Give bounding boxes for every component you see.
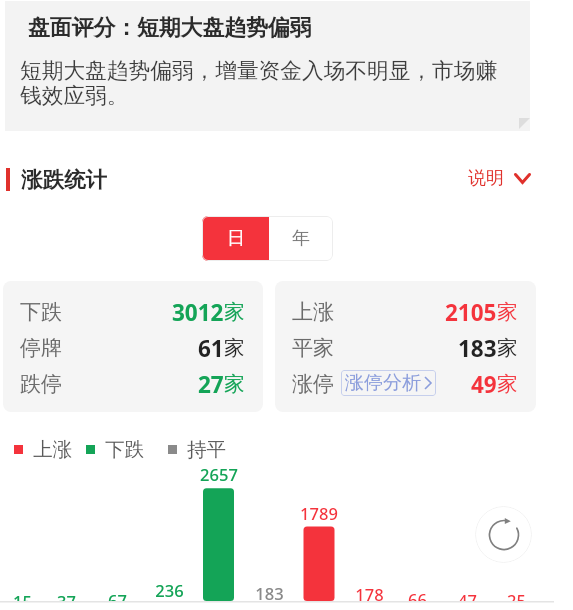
button[interactable]: 日 xyxy=(202,216,269,261)
staticText: 2105 xyxy=(445,297,497,328)
staticText: 183 xyxy=(458,333,497,364)
staticText: 上涨 xyxy=(292,299,334,325)
staticText: 短期大盘趋势偏弱，增量资金入场不明显，市场赚钱效应弱。 xyxy=(20,57,512,110)
staticText: 37 xyxy=(57,590,76,601)
button[interactable]: 盘面评分：短期大盘趋势偏弱 xyxy=(5,1,530,131)
button[interactable]: 说明 xyxy=(468,164,531,192)
button[interactable]: 年 xyxy=(269,216,333,261)
staticText: 家 xyxy=(224,335,245,361)
button[interactable]: 上涨 xyxy=(14,436,72,462)
staticText: 上涨 xyxy=(33,437,72,462)
staticText: 涨停 xyxy=(292,371,334,397)
button[interactable]: 上涨 xyxy=(275,281,536,412)
staticText: 47 xyxy=(458,589,477,601)
staticText: 27 xyxy=(198,369,224,400)
staticText: 盘面评分：短期大盘趋势偏弱 xyxy=(28,14,312,41)
staticText: 3012 xyxy=(172,297,224,328)
staticText: 年 xyxy=(292,227,310,250)
staticText: 说明 xyxy=(468,167,504,190)
staticText: 25 xyxy=(507,589,526,601)
staticText: 178 xyxy=(355,583,384,601)
button[interactable]: 持平 xyxy=(168,436,226,462)
staticText: 236 xyxy=(155,579,184,601)
staticText: 涨跌统计 xyxy=(21,166,107,193)
staticText: 2657 xyxy=(200,463,238,485)
button[interactable]: 下跌 xyxy=(3,281,263,412)
staticText: 家 xyxy=(497,299,518,325)
staticText: 15 xyxy=(13,590,32,601)
staticText: 49 xyxy=(471,369,497,400)
staticText: 家 xyxy=(224,371,245,397)
staticText: 家 xyxy=(497,335,518,361)
staticText: 涨停分析 xyxy=(345,371,421,395)
staticText: 家 xyxy=(497,371,518,397)
staticText: 跌停 xyxy=(20,371,62,397)
staticText: 67 xyxy=(108,589,127,601)
staticText: 停牌 xyxy=(20,335,62,361)
staticText: 183 xyxy=(255,582,284,601)
staticText: 66 xyxy=(408,588,427,601)
staticText: 1789 xyxy=(300,502,338,524)
button[interactable]: 下跌 xyxy=(86,436,144,462)
staticText: 61 xyxy=(198,333,224,364)
staticText: 下跌 xyxy=(20,299,62,325)
button[interactable]: Refresh xyxy=(475,506,532,563)
staticText: 下跌 xyxy=(105,437,144,462)
button[interactable]: 涨停分析 xyxy=(341,370,436,396)
staticText: 持平 xyxy=(187,437,226,462)
staticText: 家 xyxy=(224,299,245,325)
staticText: 平家 xyxy=(292,335,334,361)
staticText: 日 xyxy=(227,227,245,250)
